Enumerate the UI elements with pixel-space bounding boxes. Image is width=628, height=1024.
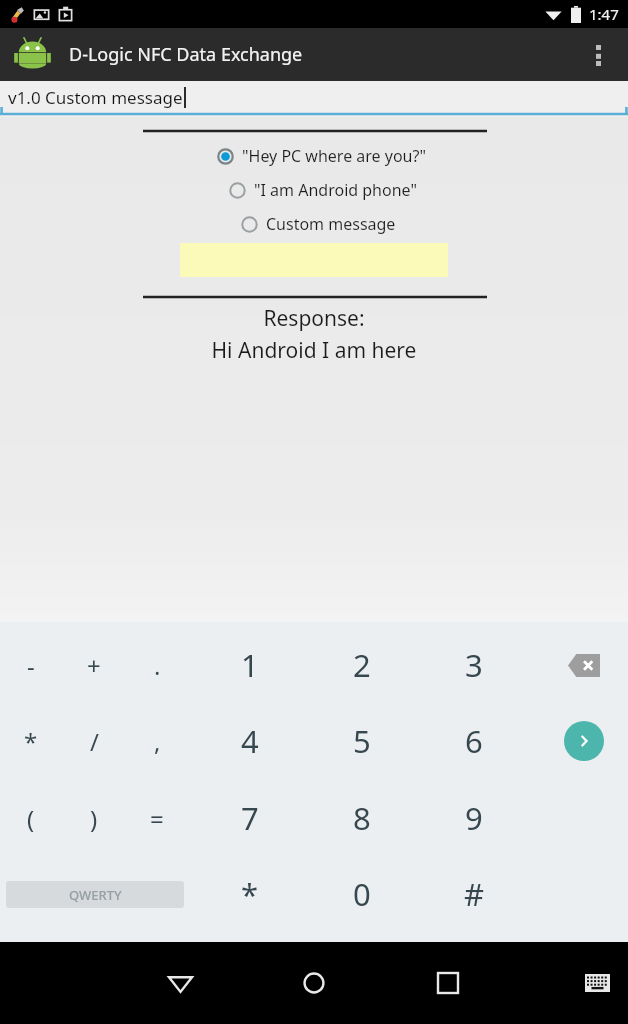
staticText: 4: [241, 720, 259, 762]
button[interactable]: (: [0, 785, 65, 851]
staticText: 7: [241, 797, 259, 839]
staticText: .: [154, 649, 161, 682]
button[interactable]: Backspace: [550, 632, 618, 698]
button[interactable]: Recent apps: [418, 953, 478, 1013]
staticText: -: [27, 649, 35, 682]
button[interactable]: 7: [216, 785, 284, 851]
button[interactable]: "Hey PC where are you?": [216, 145, 426, 167]
button[interactable]: Change keyboard: [574, 960, 620, 1006]
button[interactable]: Back: [150, 953, 210, 1013]
button[interactable]: +: [60, 632, 128, 698]
button[interactable]: /: [60, 708, 128, 774]
button[interactable]: More options: [578, 35, 618, 75]
staticText: Response:: [0, 304, 628, 333]
staticText: #: [464, 873, 485, 915]
staticText: 0: [353, 873, 371, 915]
button[interactable]: .: [123, 632, 191, 698]
staticText: 9: [465, 797, 483, 839]
button[interactable]: ,: [123, 708, 191, 774]
button[interactable]: 1: [216, 632, 284, 698]
staticText: 5: [353, 720, 371, 762]
staticText: 3: [465, 644, 483, 686]
button[interactable]: 4: [216, 708, 284, 774]
staticText: *: [241, 873, 259, 915]
staticText: (: [27, 802, 35, 835]
button[interactable]: 8: [328, 785, 396, 851]
button[interactable]: 6: [440, 708, 508, 774]
staticText: D-Logic NFC Data Exchange: [69, 42, 303, 67]
staticText: 1: [241, 644, 259, 686]
button[interactable]: v1.0 Custom message: [0, 81, 628, 117]
button[interactable]: 5: [328, 708, 396, 774]
button[interactable]: *: [216, 861, 284, 927]
staticText: *: [24, 725, 38, 758]
staticText: 2: [353, 644, 371, 686]
button[interactable]: Home: [284, 953, 344, 1013]
button[interactable]: 9: [440, 785, 508, 851]
staticText: Custom message: [266, 213, 396, 235]
button[interactable]: =: [123, 785, 191, 851]
staticText: +: [87, 649, 101, 682]
button[interactable]: "I am Android phone": [228, 179, 417, 201]
staticText: "I am Android phone": [254, 179, 417, 201]
staticText: QWERTY: [69, 886, 122, 904]
button[interactable]: ): [60, 785, 128, 851]
staticText: =: [150, 802, 164, 835]
button[interactable]: -: [0, 632, 65, 698]
button[interactable]: *: [0, 708, 65, 774]
staticText: ,: [154, 725, 161, 758]
button[interactable]: QWERTY: [6, 881, 184, 908]
staticText: /: [90, 725, 99, 758]
staticText: 8: [353, 797, 371, 839]
staticText: ): [90, 802, 98, 835]
button[interactable]: 2: [328, 632, 396, 698]
staticText: 6: [465, 720, 483, 762]
button[interactable]: Custom message: [240, 213, 396, 235]
button[interactable]: 3: [440, 632, 508, 698]
button[interactable]: Enter: [550, 708, 618, 774]
button[interactable]: #: [440, 861, 508, 927]
staticText: v1.0 Custom message: [8, 86, 183, 109]
staticText: "Hey PC where are you?": [242, 145, 426, 167]
button[interactable]: 0: [328, 861, 396, 927]
staticText: 1:47: [589, 4, 619, 24]
staticText: Hi Android I am here: [0, 336, 628, 365]
